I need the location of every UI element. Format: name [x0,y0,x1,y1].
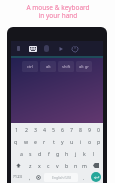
staticText: 0 [97,126,100,133]
button[interactable]: d [35,147,44,159]
staticText: y [61,138,64,145]
staticText: alt [46,64,51,69]
button[interactable]: q [11,135,21,147]
button[interactable]: 7 [67,123,76,135]
button[interactable]: Keyboard [27,43,38,54]
staticText: 1 [15,126,18,133]
staticText: k [83,150,86,157]
button[interactable]: ?123 [11,171,25,183]
button[interactable]: ctrl [22,61,38,72]
button[interactable]: 5 [49,123,58,135]
button[interactable]: o [85,135,94,147]
button[interactable]: c [44,159,53,171]
button[interactable]: v [53,159,62,171]
button[interactable]: n [71,159,80,171]
staticText: q [14,138,18,145]
staticText: , [29,174,31,181]
button[interactable]: e [31,135,40,147]
staticText: 4 [43,126,46,133]
button[interactable]: h [62,147,71,159]
button[interactable]: m [80,159,89,171]
button[interactable]: alt [40,61,56,72]
button[interactable]: . [79,171,88,183]
button[interactable]: shift [58,61,74,72]
button[interactable]: y [58,135,67,147]
button[interactable]: Play [55,43,66,54]
button[interactable]: 9 [85,123,94,135]
button[interactable]: g [53,147,62,159]
button[interactable]: 1 [11,123,21,135]
button[interactable]: z [26,159,35,171]
button[interactable]: 0 [94,123,103,135]
staticText: 2 [25,126,28,133]
staticText: p [97,138,101,145]
staticText: alt gr [79,64,89,69]
staticText: h [65,150,69,157]
button[interactable]: 8 [76,123,85,135]
button[interactable]: Power [69,43,80,54]
button[interactable]: 4 [40,123,49,135]
staticText: v [56,162,59,169]
staticText: 7 [70,126,73,133]
staticText: i [80,138,82,145]
staticText: ctrl [27,64,34,69]
staticText: . [83,174,85,181]
button[interactable]: Backspace [89,159,103,171]
staticText: l [93,150,95,157]
button[interactable]: r [40,135,49,147]
button[interactable]: b [62,159,71,171]
staticText: 5 [52,126,55,133]
staticText: w [24,138,29,145]
button[interactable]: a [17,147,26,159]
staticText: j [75,150,77,157]
staticText: 3 [34,126,37,133]
staticText: 9 [88,126,91,133]
staticText: 6 [61,126,64,133]
button[interactable]: u [67,135,76,147]
staticText: r [43,138,46,145]
button[interactable]: f [44,147,53,159]
button[interactable]: l [89,147,98,159]
button[interactable]: p [94,135,103,147]
staticText: shift [62,64,71,69]
button[interactable]: Battery [13,43,24,54]
button[interactable]: 2 [21,123,31,135]
button[interactable]: 6 [58,123,67,135]
staticText: n [74,162,78,169]
staticText: a [20,150,23,157]
staticText: m [82,162,87,169]
staticText: ?123 [13,174,23,180]
button[interactable]: , [25,171,34,183]
button[interactable]: Enter [91,172,101,182]
button[interactable]: Settings [34,171,43,183]
staticText: English (US) [52,175,71,180]
button[interactable]: English (US) [44,173,78,182]
button[interactable]: t [49,135,58,147]
staticText: 8 [79,126,82,133]
staticText: s [29,150,32,157]
staticText: o [88,138,92,145]
button[interactable]: i [76,135,85,147]
staticText: c [47,162,50,169]
button[interactable]: Mouse [41,43,52,54]
button[interactable]: w [21,135,31,147]
button[interactable]: 3 [31,123,40,135]
staticText: t [53,138,55,145]
staticText: b [65,162,69,169]
button[interactable]: s [26,147,35,159]
staticText: A mouse & keyboard in your hand [26,3,90,20]
staticText: d [38,150,42,157]
staticText: e [34,138,37,145]
button[interactable]: alt gr [76,61,92,72]
staticText: u [70,138,74,145]
staticText: g [56,150,60,157]
button[interactable]: Shift [11,159,26,171]
button[interactable]: j [71,147,80,159]
button[interactable]: x [35,159,44,171]
button[interactable]: k [80,147,89,159]
staticText: f [48,150,50,157]
staticText: z [29,162,32,169]
staticText: x [38,162,41,169]
